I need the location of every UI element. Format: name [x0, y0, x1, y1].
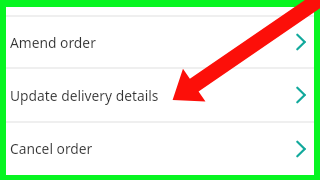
staticText: Update delivery details: [10, 86, 159, 105]
button[interactable]: Amend order: [6, 16, 314, 68]
other: Amend order: [292, 33, 310, 51]
staticText: Cancel order: [10, 139, 93, 158]
other: Cancel order: [292, 140, 310, 158]
other: Update delivery details: [292, 86, 310, 104]
staticText: Amend order: [10, 33, 96, 52]
button[interactable]: Cancel order: [6, 122, 314, 175]
button[interactable]: Update delivery details: [6, 68, 314, 122]
